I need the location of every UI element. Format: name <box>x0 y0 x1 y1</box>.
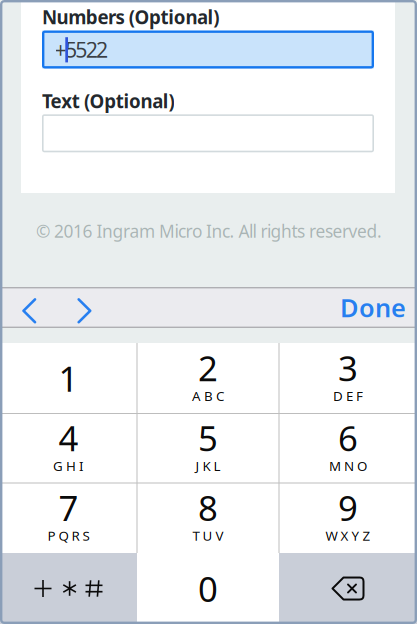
button[interactable]: Next field <box>46 288 92 326</box>
staticText: 0 <box>198 565 218 611</box>
button[interactable]: 4 <box>0 413 137 483</box>
button[interactable]: 8 <box>137 483 279 553</box>
staticText: 5 <box>198 415 218 461</box>
button[interactable]: 2 <box>137 343 279 413</box>
button[interactable]: 9 <box>279 483 417 553</box>
staticText: 6 <box>338 415 358 461</box>
staticText: 2 <box>198 345 218 391</box>
staticText: 9 <box>338 484 358 530</box>
staticText: T U V <box>192 527 223 544</box>
staticText: A B C <box>192 387 224 405</box>
staticText: 3 <box>338 345 358 391</box>
button[interactable]: Delete <box>279 553 417 624</box>
staticText: 7 <box>58 484 78 530</box>
staticText: © 2016 Ingram Micro Inc. All rights rese… <box>36 219 382 242</box>
button[interactable]: 6 <box>279 413 417 483</box>
button[interactable]: 0 <box>137 553 279 624</box>
staticText: 8 <box>198 484 218 530</box>
staticText: J K L <box>195 457 220 475</box>
button[interactable]: Symbols <box>0 553 137 624</box>
staticText: M N O <box>329 457 367 475</box>
staticText: Text (Optional) <box>42 89 174 113</box>
staticText: Done <box>340 291 406 324</box>
staticText: 1 <box>58 355 78 401</box>
staticText: D E F <box>333 387 363 405</box>
staticText: +5522 <box>54 35 108 64</box>
staticText: 4 <box>58 415 78 461</box>
staticText: Numbers (Optional) <box>42 5 219 29</box>
staticText: W X Y Z <box>325 527 370 544</box>
button[interactable]: 5 <box>137 413 279 483</box>
staticText: P Q R S <box>47 527 89 544</box>
button[interactable]: 1 <box>0 343 137 413</box>
staticText: G H I <box>53 457 84 475</box>
button[interactable]: Done <box>341 288 405 326</box>
button[interactable]: Previous field <box>0 288 46 326</box>
button[interactable]: 7 <box>0 483 137 553</box>
button[interactable]: 3 <box>279 343 417 413</box>
